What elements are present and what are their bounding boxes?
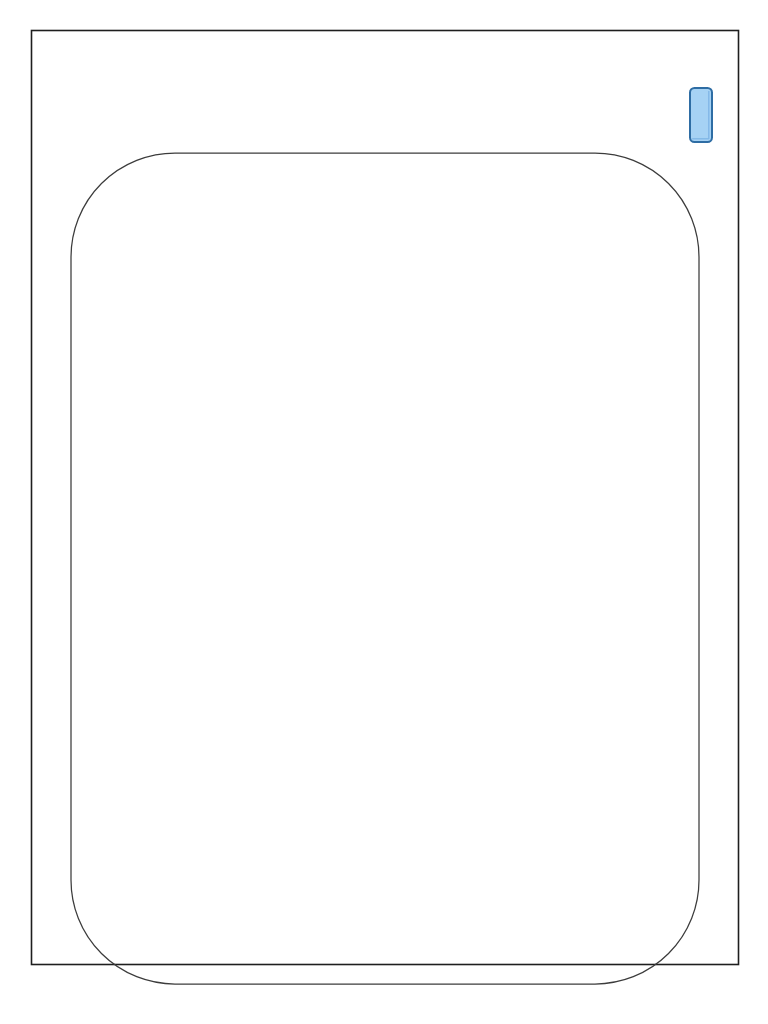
other: Side button bbox=[0, 0, 768, 1024]
